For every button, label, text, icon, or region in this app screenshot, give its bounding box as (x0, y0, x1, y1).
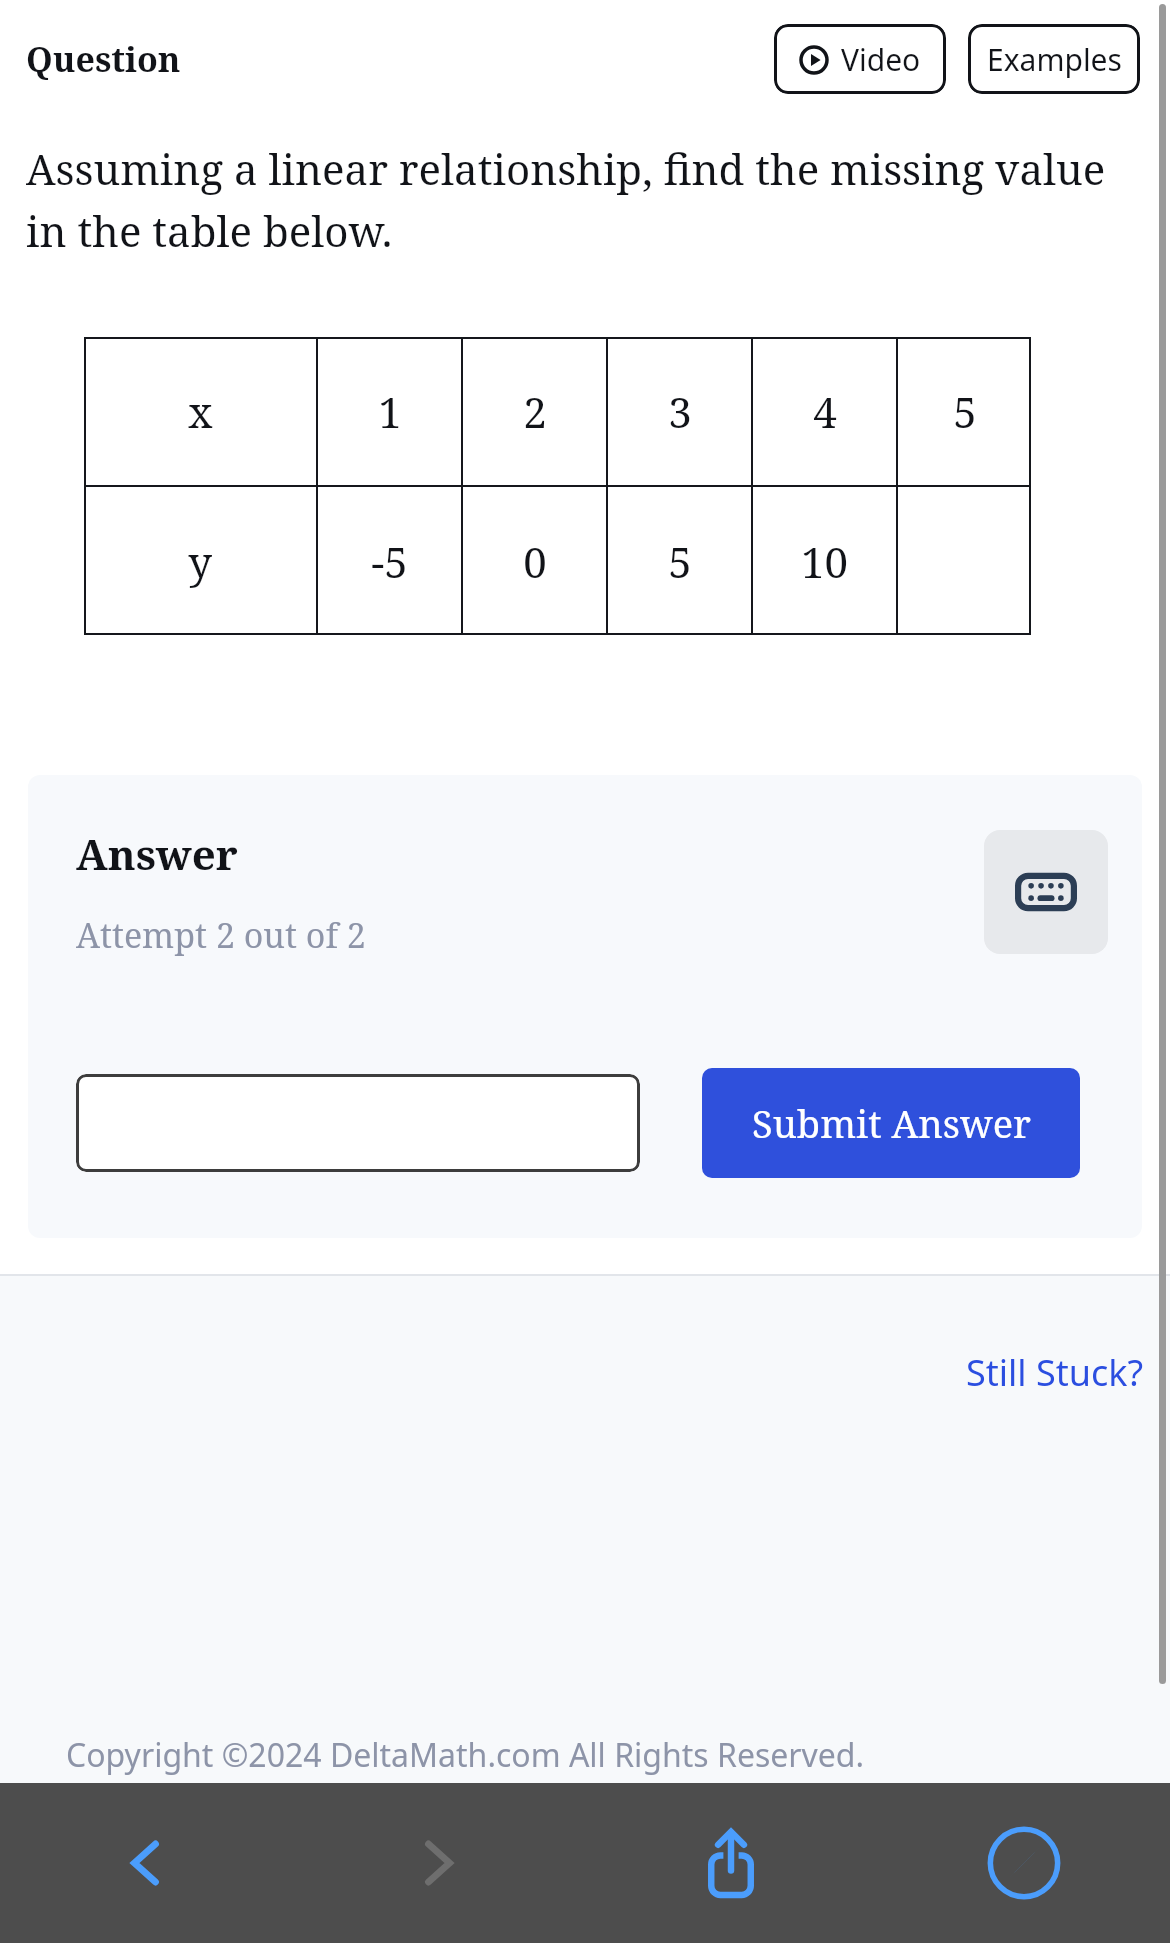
staticText: Still Stuck? (966, 1348, 1144, 1397)
staticText: Copyright ©2024 DeltaMath.com All Rights… (66, 1733, 865, 1777)
staticText: 3 (668, 383, 692, 440)
staticText: 4 (813, 383, 837, 440)
staticText: -5 (371, 533, 408, 590)
button[interactable]: Video (774, 24, 946, 94)
button[interactable]: Safari (877, 1783, 1170, 1943)
staticText: Question (26, 36, 181, 82)
button[interactable]: Back (0, 1783, 292, 1943)
staticText: Submit Answer (752, 1097, 1031, 1149)
staticText: 0 (523, 533, 547, 590)
staticText: Video (841, 39, 921, 80)
staticText: Answer (76, 825, 238, 882)
button[interactable]: Keyboard (984, 830, 1108, 954)
staticText: 5 (953, 383, 977, 440)
staticText: 5 (668, 533, 692, 590)
staticText: x (188, 383, 213, 440)
staticText: Examples (987, 39, 1122, 80)
staticText: y (188, 533, 212, 590)
button[interactable]: Submit Answer (702, 1068, 1080, 1178)
button[interactable] (76, 1074, 640, 1172)
button[interactable]: Still Stuck? (956, 1342, 1154, 1403)
staticText: Assuming a linear relationship, find the… (26, 140, 1140, 259)
button[interactable]: Examples (968, 24, 1140, 94)
staticText: Attempt 2 out of 2 (76, 912, 366, 958)
button[interactable]: Share (584, 1783, 877, 1943)
staticText: 1 (378, 383, 402, 440)
staticText: 2 (523, 383, 547, 440)
button[interactable]: Forward (292, 1783, 584, 1943)
staticText: 10 (801, 533, 848, 590)
